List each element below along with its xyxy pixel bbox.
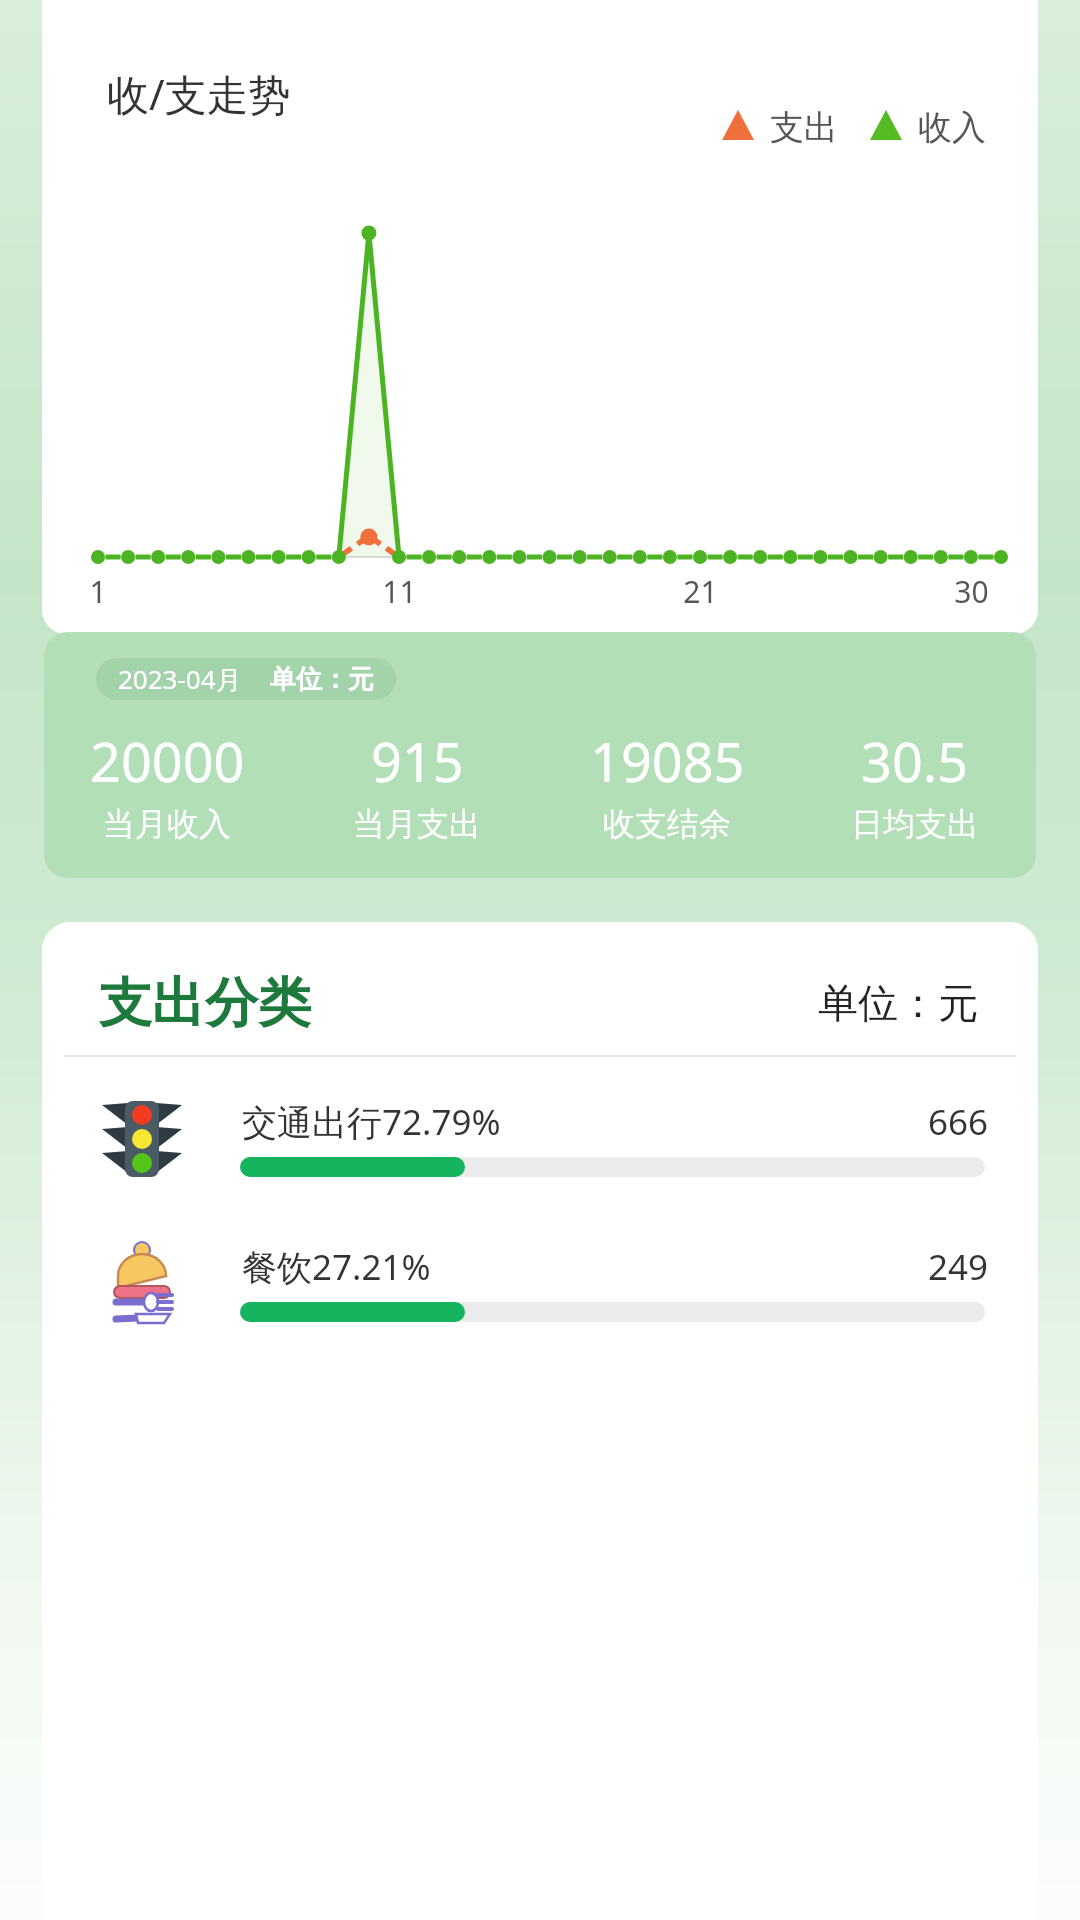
staticText: 收入: [918, 106, 986, 149]
staticText: 当月收入: [103, 804, 231, 844]
staticText: 支出分类: [99, 970, 311, 1037]
button[interactable]: 30.5: [795, 724, 1035, 844]
staticText: 30: [954, 571, 989, 612]
staticText: 收支结余: [603, 804, 731, 844]
button[interactable]: 19085: [547, 724, 787, 844]
staticText: 20000: [90, 724, 245, 798]
staticText: 1: [89, 571, 107, 612]
staticText: 19085: [590, 724, 745, 798]
staticText: 30.5: [861, 724, 969, 798]
staticText: 收/支走势: [107, 65, 291, 122]
staticText: 餐饮27.21%: [242, 1243, 431, 1291]
staticText: 支出: [770, 106, 838, 149]
staticText: 249: [928, 1243, 989, 1291]
staticText: 单位：元: [818, 978, 978, 1028]
staticText: 当月支出: [353, 804, 481, 844]
staticText: 11: [382, 571, 417, 612]
staticText: 666: [928, 1098, 989, 1146]
button[interactable]: 2023-04月: [118, 658, 374, 700]
staticText: 2023-04月: [118, 661, 242, 697]
staticText: 915: [371, 724, 464, 798]
staticText: 单位：元: [270, 663, 374, 696]
button[interactable]: 交通出行72.79%: [42, 1095, 1038, 1215]
button[interactable]: 20000: [47, 724, 287, 844]
button[interactable]: 餐饮27.21%: [42, 1240, 1038, 1360]
staticText: 21: [683, 571, 718, 612]
staticText: 日均支出: [851, 804, 979, 844]
button[interactable]: 915: [297, 724, 537, 844]
staticText: 交通出行72.79%: [242, 1098, 501, 1146]
